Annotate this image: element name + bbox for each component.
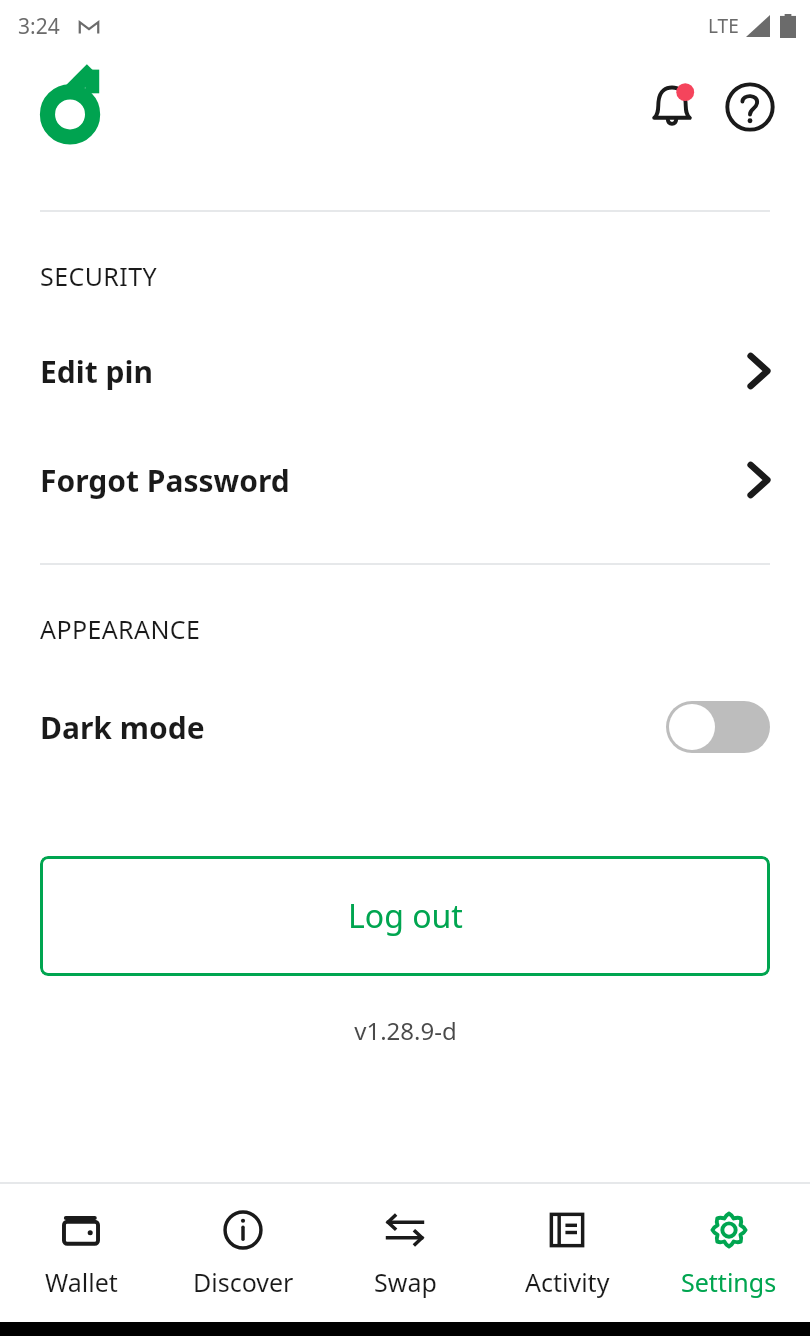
button[interactable]: Notifications	[640, 75, 704, 139]
staticText: APPEARANCE	[40, 612, 201, 646]
button[interactable]: Log out	[40, 856, 770, 976]
staticText: Settings	[681, 1265, 777, 1299]
staticText: v1.28.9-d	[354, 1014, 457, 1047]
button[interactable]: Discover	[162, 1184, 324, 1322]
button[interactable]: Help	[718, 75, 782, 139]
staticText: Activity	[525, 1265, 610, 1299]
button[interactable]: Activity	[486, 1184, 648, 1322]
staticText: Forgot Password	[40, 460, 290, 501]
button[interactable]: Settings	[648, 1184, 810, 1322]
button[interactable]: Forgot Password	[0, 454, 810, 506]
staticText: Log out	[348, 894, 463, 938]
staticText: Edit pin	[40, 351, 153, 392]
button[interactable]: Dark mode	[0, 698, 810, 756]
staticText: Dark mode	[40, 707, 205, 748]
button[interactable]: Swap	[324, 1184, 486, 1322]
button[interactable]: Wallet	[0, 1184, 162, 1322]
staticText: LTE	[708, 13, 739, 39]
staticText: 3:24	[18, 12, 60, 41]
staticText: Wallet	[45, 1265, 118, 1299]
staticText: Swap	[374, 1265, 437, 1299]
staticText: Discover	[193, 1265, 294, 1299]
staticText: SECURITY	[40, 259, 157, 293]
button[interactable]: Edit pin	[0, 345, 810, 397]
